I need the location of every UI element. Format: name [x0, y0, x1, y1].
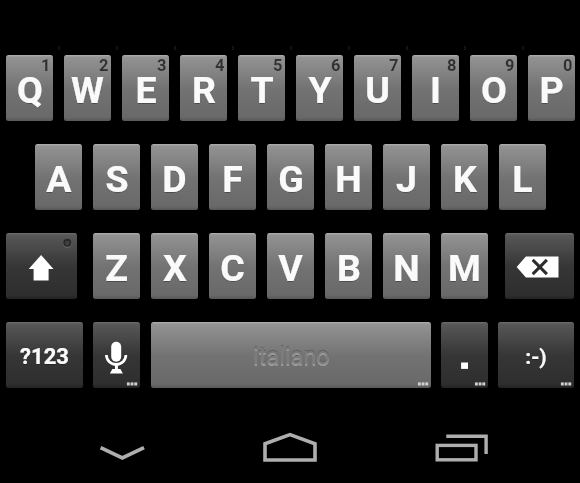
button[interactable]: O: [470, 55, 517, 121]
button[interactable]: I: [412, 55, 459, 121]
staticText: F: [222, 157, 243, 201]
staticText: I: [430, 69, 441, 113]
staticText: O: [481, 69, 507, 113]
staticText: E: [135, 69, 157, 113]
staticText: 1: [41, 56, 51, 75]
button[interactable]: G: [267, 144, 314, 210]
staticText: Y: [308, 68, 332, 112]
button[interactable]: B: [325, 233, 372, 299]
staticText: 2: [99, 56, 109, 75]
button[interactable]: C: [209, 233, 256, 299]
staticText: Q: [17, 69, 43, 113]
staticText: 8: [447, 56, 457, 75]
staticText: I: [430, 68, 441, 112]
staticText: 5: [273, 56, 283, 75]
staticText: G: [278, 158, 304, 202]
button[interactable]: Delete: [505, 233, 574, 299]
staticText: C: [220, 247, 245, 291]
button[interactable]: E: [122, 55, 169, 121]
staticText: S: [105, 158, 129, 202]
staticText: P: [539, 68, 564, 112]
button[interactable]: Z: [93, 233, 140, 299]
staticText: Y: [308, 69, 332, 113]
button[interactable]: M: [441, 233, 488, 299]
staticText: 9: [505, 56, 515, 75]
staticText: 0: [563, 56, 573, 75]
button[interactable]: P: [528, 55, 575, 121]
staticText: T: [250, 69, 274, 113]
staticText: X: [163, 247, 187, 291]
button[interactable]: F: [209, 144, 256, 210]
button[interactable]: N: [383, 233, 430, 299]
staticText: V: [278, 246, 303, 290]
staticText: P: [539, 69, 564, 113]
staticText: 4: [215, 56, 225, 75]
staticText: 6: [331, 56, 341, 75]
staticText: H: [335, 158, 362, 202]
staticText: R: [192, 69, 216, 113]
button[interactable]: J: [383, 144, 430, 210]
button[interactable]: W: [64, 55, 111, 121]
button[interactable]: U: [354, 55, 401, 121]
staticText: J: [396, 158, 417, 202]
button[interactable]: Shift: [6, 233, 77, 299]
staticText: :-): [525, 345, 547, 370]
button[interactable]: :-): [498, 322, 574, 388]
staticText: A: [46, 157, 72, 201]
staticText: M: [448, 246, 481, 290]
button[interactable]: S: [93, 144, 140, 210]
staticText: 3: [157, 56, 167, 75]
staticText: K: [453, 157, 477, 201]
button[interactable]: Home: [250, 413, 330, 483]
staticText: B: [337, 246, 361, 290]
staticText: N: [393, 247, 420, 291]
staticText: O: [481, 68, 507, 112]
button[interactable]: Voice input: [93, 322, 140, 388]
staticText: Z: [105, 247, 128, 291]
button[interactable]: K: [441, 144, 488, 210]
staticText: F: [222, 158, 243, 202]
staticText: D: [162, 157, 187, 201]
button[interactable]: T: [238, 55, 285, 121]
staticText: ?123: [20, 344, 69, 370]
staticText: K: [453, 158, 477, 202]
button[interactable]: Q: [6, 55, 53, 121]
staticText: J: [396, 157, 417, 201]
button[interactable]: R: [180, 55, 227, 121]
staticText: H: [335, 157, 362, 201]
button[interactable]: ?123: [6, 322, 83, 388]
button[interactable]: Y: [296, 55, 343, 121]
button[interactable]: Recent apps: [418, 413, 498, 483]
staticText: ?123: [20, 345, 69, 371]
staticText: N: [393, 246, 420, 290]
staticText: M: [448, 247, 481, 291]
staticText: A: [46, 158, 72, 202]
button[interactable]: V: [267, 233, 314, 299]
staticText: T: [250, 68, 274, 112]
button[interactable]: H: [325, 144, 372, 210]
staticText: G: [278, 157, 304, 201]
staticText: Q: [17, 68, 43, 112]
staticText: italiano: [253, 342, 330, 370]
staticText: :-): [525, 346, 547, 371]
staticText: S: [105, 157, 129, 201]
staticText: Z: [105, 246, 128, 290]
button[interactable]: X: [151, 233, 198, 299]
button[interactable]: Period: [441, 322, 488, 388]
staticText: D: [162, 158, 187, 202]
button[interactable]: L: [499, 144, 546, 210]
button[interactable]: italiano: [151, 322, 431, 388]
staticText: B: [337, 247, 361, 291]
button[interactable]: D: [151, 144, 198, 210]
staticText: L: [512, 157, 533, 201]
staticText: W: [71, 68, 104, 112]
button[interactable]: Hide keyboard: [82, 413, 162, 483]
staticText: X: [163, 246, 187, 290]
staticText: V: [278, 247, 303, 291]
staticText: R: [192, 68, 216, 112]
staticText: E: [135, 68, 157, 112]
staticText: U: [365, 68, 390, 112]
staticText: C: [220, 246, 245, 290]
button[interactable]: A: [35, 144, 82, 210]
staticText: L: [512, 158, 533, 202]
